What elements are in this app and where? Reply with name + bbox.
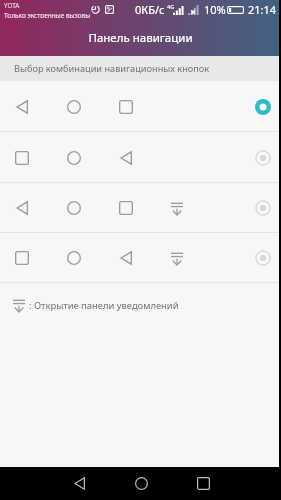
staticText: YOTA [4, 1, 20, 10]
button[interactable]: Recents [172, 467, 234, 500]
staticText: 21:14 [248, 2, 277, 17]
staticText: : Открытие панели уведомлений [29, 299, 179, 312]
button[interactable] [0, 132, 281, 183]
staticText: 0КБ/c [135, 2, 165, 17]
button[interactable]: Back [48, 467, 110, 500]
staticText: Выбор комбинации навигационных кнопок [14, 62, 210, 75]
staticText: 4G [167, 3, 175, 10]
staticText: Панель навигации [0, 30, 281, 46]
staticText: 10% [204, 2, 226, 17]
button[interactable] [0, 233, 281, 283]
button[interactable] [0, 183, 281, 233]
button[interactable]: Home [110, 467, 172, 500]
staticText: Только экстренные вызовы [4, 11, 91, 18]
button[interactable] [0, 81, 281, 132]
